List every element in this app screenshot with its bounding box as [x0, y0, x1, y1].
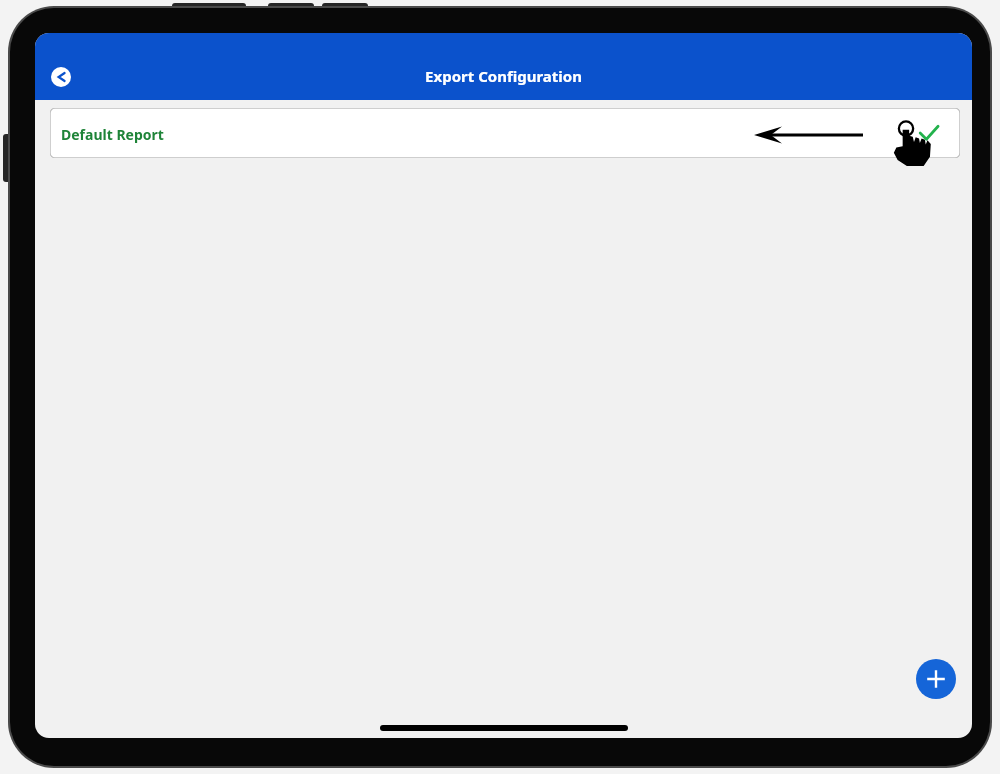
button[interactable]: Back — [51, 67, 71, 87]
button[interactable]: Default Report — [50, 108, 960, 158]
staticText: Export Configuration — [35, 66, 972, 88]
button[interactable]: Add — [916, 659, 956, 699]
staticText: Default Report — [61, 125, 164, 144]
button[interactable]: Selected — [916, 120, 942, 146]
